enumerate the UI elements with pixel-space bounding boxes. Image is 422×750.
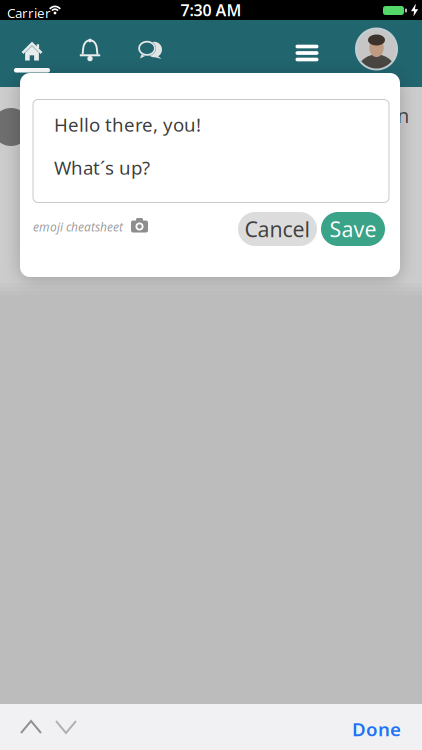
staticText: Done: [352, 717, 401, 741]
staticText: n: [397, 102, 409, 129]
staticText: emoji cheatsheet: [33, 219, 123, 235]
staticText: Cancel: [244, 215, 310, 243]
button[interactable]: Profile: [356, 28, 397, 69]
button[interactable]: Cancel: [238, 212, 317, 246]
button[interactable]: Menu: [289, 38, 325, 68]
button[interactable]: Conversations: [132, 30, 168, 70]
button[interactable]: Previous: [16, 714, 46, 740]
staticText: 7:30 AM: [180, 0, 241, 21]
staticText: Save: [329, 215, 376, 243]
staticText: Hello there, you!: [54, 112, 201, 137]
staticText: Carrier: [7, 4, 51, 22]
button[interactable]: Done: [331, 714, 401, 744]
button[interactable]: Save: [321, 212, 385, 246]
button[interactable]: Notifications: [72, 30, 108, 70]
button[interactable]: Next: [51, 714, 81, 740]
button[interactable]: Add photo: [127, 212, 152, 235]
button[interactable]: Home: [14, 28, 50, 76]
staticText: What´s up?: [54, 155, 150, 180]
